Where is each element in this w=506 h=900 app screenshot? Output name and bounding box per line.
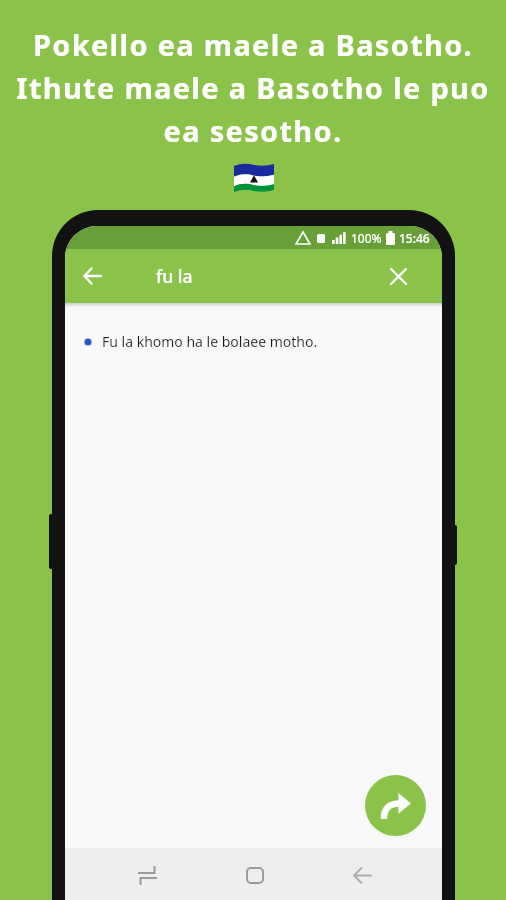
staticText: fu la	[156, 264, 193, 288]
staticText: 15:46	[399, 230, 430, 246]
staticText: Fu la khomo ha le bolaee motho.	[102, 332, 318, 351]
button[interactable]	[127, 855, 167, 895]
button[interactable]	[365, 775, 426, 836]
button[interactable]	[371, 249, 425, 303]
button[interactable]: Fu la khomo ha le bolaee motho.	[84, 332, 430, 351]
staticText: Pokello ea maele a Basotho. Ithute maele…	[16, 25, 490, 150]
button[interactable]	[65, 249, 119, 303]
staticText: 100%	[351, 230, 382, 246]
button[interactable]	[235, 855, 275, 895]
button[interactable]	[341, 855, 381, 895]
